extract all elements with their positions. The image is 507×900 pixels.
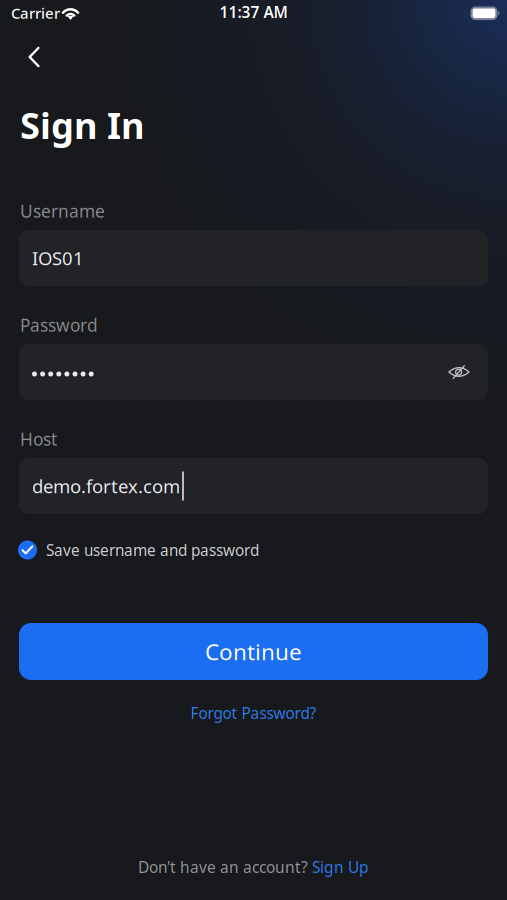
staticText: Sign Up	[312, 857, 369, 877]
staticText: Forgot Password?	[190, 703, 316, 723]
staticText: Password	[20, 313, 98, 336]
staticText: Don't have an account?	[138, 857, 312, 877]
staticText: Carrier	[11, 3, 60, 23]
staticText: demo.fortex.com	[32, 474, 180, 498]
staticText: Username	[20, 199, 105, 222]
button[interactable]: Forgot Password?	[0, 702, 507, 724]
button[interactable]: Continue	[19, 623, 488, 680]
button[interactable]: Show password	[441, 352, 477, 392]
button[interactable]: Back	[14, 36, 54, 78]
button[interactable]: Sign Up	[312, 857, 369, 877]
staticText: IOS01	[32, 246, 84, 270]
button[interactable]: Save username and password	[18, 539, 348, 561]
staticText: 11:37 AM	[219, 2, 287, 22]
staticText: Host	[20, 427, 57, 450]
staticText: Continue	[205, 636, 302, 666]
staticText: Save username and password	[46, 540, 259, 560]
staticText: Sign In	[20, 101, 145, 149]
